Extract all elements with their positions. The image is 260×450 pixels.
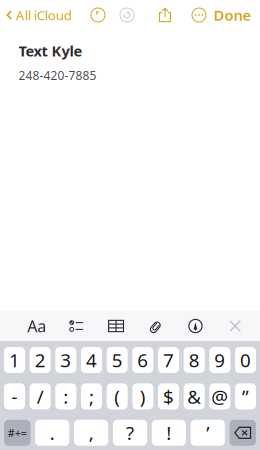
button[interactable]: Markup [176, 311, 215, 341]
button[interactable]: ( [107, 383, 128, 409]
button[interactable]: Format [17, 311, 56, 341]
staticText: $ [163, 384, 174, 409]
staticText: ) [140, 384, 146, 409]
button[interactable]: 5 [107, 347, 128, 373]
staticText: ’ [206, 420, 209, 445]
staticText: 1 [9, 348, 20, 372]
staticText: All iCloud [16, 6, 72, 24]
button[interactable]: ” [235, 383, 256, 409]
staticText: : [63, 384, 68, 409]
staticText: 8 [189, 348, 200, 372]
staticText: 248-420-7885 [18, 67, 96, 83]
button[interactable]: 3 [55, 347, 76, 373]
button[interactable]: 7 [158, 347, 179, 373]
button[interactable]: , [74, 420, 108, 446]
staticText: #+= [8, 426, 27, 440]
staticText: 5 [112, 348, 123, 372]
staticText: Text Kyle [18, 41, 82, 60]
button[interactable]: Delete [229, 420, 256, 446]
staticText: 0 [240, 348, 251, 372]
button[interactable]: Redo [112, 0, 142, 30]
button[interactable]: Undo [84, 0, 112, 30]
staticText: @ [211, 384, 228, 409]
staticText: ! [166, 420, 171, 445]
staticText: 9 [214, 348, 225, 372]
button[interactable]: ) [132, 383, 153, 409]
button[interactable]: 6 [132, 347, 153, 373]
staticText: 6 [137, 348, 148, 372]
button[interactable]: 4 [81, 347, 102, 373]
button[interactable]: ; [81, 383, 102, 409]
staticText: . [50, 420, 55, 445]
button[interactable]: ? [113, 420, 147, 446]
button[interactable]: / [30, 383, 51, 409]
staticText: Done [213, 5, 251, 25]
staticText: 7 [163, 348, 174, 372]
staticText: ” [242, 384, 249, 409]
button[interactable]: #+= [4, 420, 30, 446]
staticText: 3 [60, 348, 71, 372]
staticText: Aa [27, 315, 46, 337]
button[interactable]: . [35, 420, 69, 446]
button[interactable]: & [184, 383, 205, 409]
button[interactable]: 0 [235, 347, 256, 373]
button[interactable]: 8 [184, 347, 205, 373]
button[interactable]: Close [215, 311, 255, 341]
button[interactable]: All iCloud [0, 0, 84, 30]
staticText: ( [114, 384, 120, 409]
button[interactable]: - [4, 383, 25, 409]
staticText: 2 [35, 348, 46, 372]
staticText: , [89, 420, 94, 445]
button[interactable]: Share [142, 0, 188, 30]
button[interactable]: $ [158, 383, 179, 409]
button[interactable]: More [188, 0, 210, 30]
staticText: & [187, 384, 201, 409]
staticText: 4 [86, 348, 97, 372]
button[interactable]: Checklist [56, 311, 96, 341]
button[interactable]: ’ [191, 420, 225, 446]
button[interactable]: 9 [209, 347, 230, 373]
button[interactable]: : [55, 383, 76, 409]
button[interactable]: @ [209, 383, 230, 409]
button[interactable]: ! [152, 420, 186, 446]
button[interactable]: 1 [4, 347, 25, 373]
staticText: ? [126, 420, 134, 445]
button[interactable]: Table [96, 311, 136, 341]
button[interactable]: Done [210, 0, 260, 30]
button[interactable]: Attach [136, 311, 176, 341]
staticText: ; [89, 384, 94, 409]
button[interactable]: 2 [30, 347, 51, 373]
staticText: / [37, 384, 44, 409]
staticText: - [11, 384, 17, 409]
